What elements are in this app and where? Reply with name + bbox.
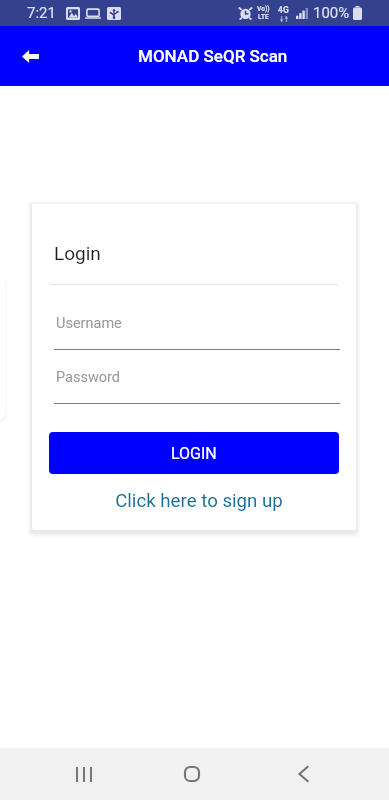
button[interactable]: Back <box>10 36 50 76</box>
staticText: Password <box>56 369 121 386</box>
button[interactable]: Recent apps <box>60 750 108 798</box>
staticText: LOGIN <box>171 444 217 463</box>
staticText: Click here to sign up <box>115 490 283 512</box>
staticText: 100% <box>313 4 350 22</box>
staticText: 7:21 <box>27 4 56 22</box>
staticText: MONAD SeQR Scan <box>138 46 288 66</box>
staticText: Login <box>54 242 101 264</box>
button[interactable]: Back <box>279 750 327 798</box>
staticText: 4G <box>278 5 289 15</box>
staticText: LTE <box>258 13 269 21</box>
staticText: Username <box>56 315 122 332</box>
button[interactable]: Home <box>168 750 216 798</box>
button[interactable]: Click here to sign up <box>48 485 350 517</box>
staticText: Vo)) <box>257 5 270 13</box>
button[interactable]: LOGIN <box>49 432 339 474</box>
